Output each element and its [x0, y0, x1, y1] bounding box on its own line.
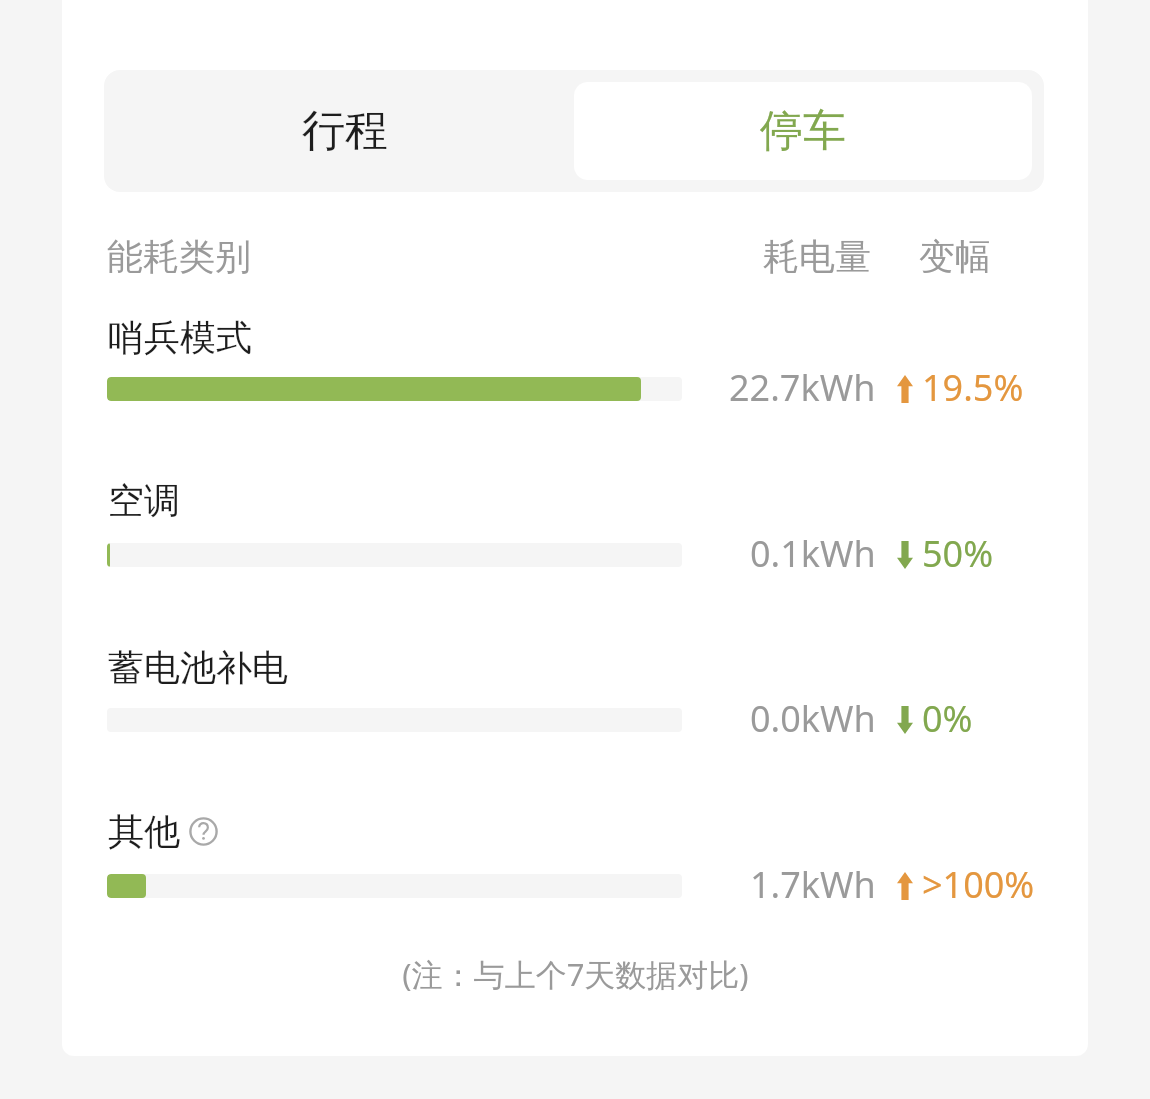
staticText: 0.1kWh: [750, 529, 876, 577]
staticText: (注：与上个7天数据对比): [402, 953, 749, 995]
staticText: 其他: [108, 809, 180, 854]
button[interactable]: 行程: [104, 70, 574, 192]
staticText: 19.5%: [922, 363, 1024, 411]
button[interactable]: [62, 629, 1088, 775]
staticText: 1.7kWh: [750, 860, 876, 908]
button[interactable]: [62, 298, 1088, 444]
button[interactable]: [62, 464, 1088, 610]
staticText: 行程: [302, 104, 388, 158]
staticText: 0%: [922, 694, 973, 742]
staticText: 能耗类别: [107, 234, 251, 279]
staticText: 0.0kWh: [750, 694, 876, 742]
staticText: 空调: [108, 478, 180, 523]
staticText: 22.7kWh: [729, 363, 876, 411]
staticText: >100%: [922, 860, 1035, 908]
staticText: 哨兵模式: [108, 315, 252, 360]
button[interactable]: Help: [189, 817, 218, 846]
staticText: 变幅: [919, 234, 991, 279]
button[interactable]: 停车: [574, 82, 1032, 180]
staticText: 50%: [922, 529, 994, 577]
staticText: 停车: [760, 104, 846, 158]
staticText: 耗电量: [763, 234, 871, 279]
staticText: 蓄电池补电: [108, 645, 288, 690]
button[interactable]: [62, 795, 1088, 941]
